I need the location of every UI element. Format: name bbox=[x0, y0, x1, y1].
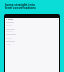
button[interactable]: Menu bbox=[6, 19, 58, 20]
staticText: Jump straight into new conversations bbox=[5, 3, 37, 10]
